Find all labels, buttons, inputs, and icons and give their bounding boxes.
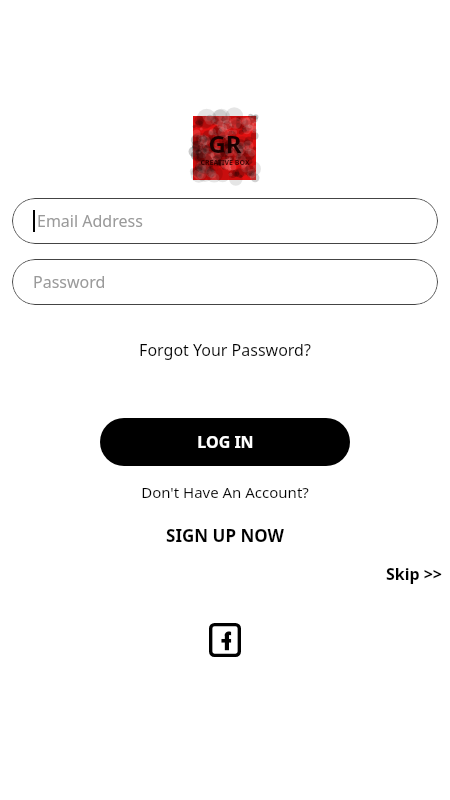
button[interactable]: GR: [193, 116, 256, 180]
button[interactable]: Email Address: [12, 198, 438, 244]
button[interactable]: Forgot Your Password?: [0, 336, 450, 364]
staticText: CREATIVE BOX: [200, 158, 250, 168]
staticText: Don't Have An Account?: [141, 482, 309, 502]
staticText: Password: [33, 271, 106, 293]
staticText: LOG IN: [197, 431, 254, 453]
staticText: SIGN UP NOW: [166, 524, 284, 547]
staticText: Skip >>: [385, 563, 442, 585]
button[interactable]: Skip >>: [330, 560, 442, 588]
button[interactable]: Sign in with Facebook: [207, 622, 243, 658]
staticText: Email Address: [37, 210, 143, 232]
button[interactable]: SIGN UP NOW: [0, 521, 450, 549]
button[interactable]: Password: [12, 259, 438, 305]
staticText: Forgot Your Password?: [139, 339, 311, 361]
button[interactable]: LOG IN: [100, 418, 350, 466]
staticText: GR: [208, 127, 242, 160]
